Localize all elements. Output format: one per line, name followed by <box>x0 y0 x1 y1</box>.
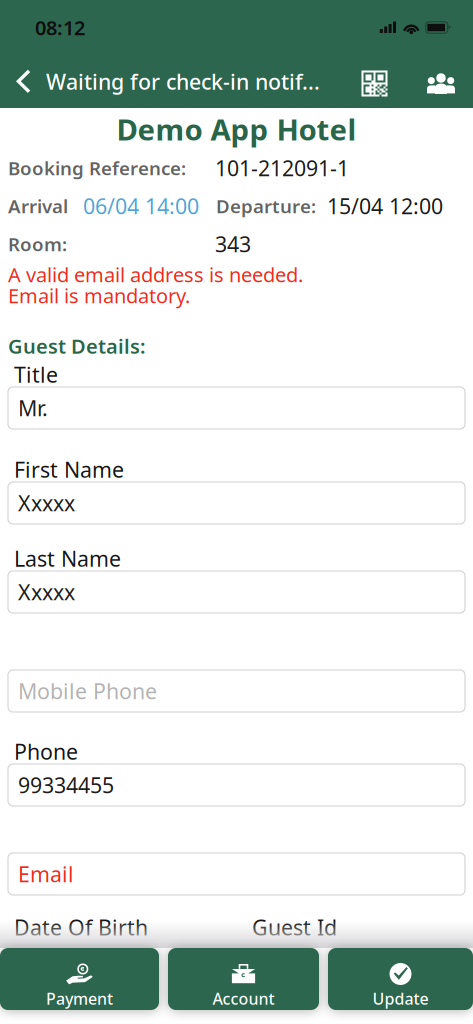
staticText: Mr. <box>18 394 48 422</box>
staticText: Update <box>372 988 428 1009</box>
staticText: 15/04 12:00 <box>327 192 443 220</box>
staticText: 343 <box>215 230 251 258</box>
staticText: Booking Reference: <box>8 156 186 180</box>
staticText: First Name <box>14 455 124 484</box>
staticText: Title <box>14 360 58 389</box>
staticText: Room: <box>8 232 67 256</box>
staticText: A valid email address is needed. <box>8 261 303 288</box>
staticText: Departure: <box>216 194 316 218</box>
staticText: Payment <box>46 988 113 1009</box>
staticText: Phone <box>14 737 78 766</box>
staticText: 101-212091-1 <box>215 154 349 182</box>
staticText: Guest Id <box>252 913 337 941</box>
staticText: Xxxxx <box>18 578 75 606</box>
staticText: Guest Details: <box>8 333 146 359</box>
staticText: Last Name <box>14 544 121 573</box>
staticText: Account <box>212 988 274 1009</box>
staticText: Arrival <box>8 194 68 218</box>
staticText: 06/04 14:00 <box>83 192 199 220</box>
button[interactable]: Back <box>0 55 46 108</box>
staticText: Email is mandatory. <box>8 282 190 309</box>
staticText: 99334455 <box>18 771 114 799</box>
button[interactable]: Scan QR code <box>350 53 399 110</box>
button[interactable]: Account <box>168 948 319 1010</box>
staticText: 08:12 <box>35 14 85 41</box>
staticText: Email <box>18 860 74 888</box>
staticText: Demo App Hotel <box>116 109 356 148</box>
staticText: Mobile Phone <box>18 677 157 705</box>
staticText: Xxxxx <box>18 489 75 517</box>
staticText: Waiting for check-in notif... <box>46 67 320 96</box>
button[interactable]: Payment <box>0 948 159 1010</box>
button[interactable]: Update <box>328 948 473 1010</box>
button[interactable]: Guests <box>417 53 465 110</box>
staticText: Date Of Birth <box>14 913 148 941</box>
